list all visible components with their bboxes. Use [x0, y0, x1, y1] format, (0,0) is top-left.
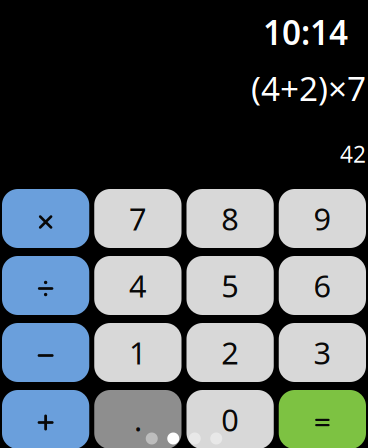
staticText: 6 [313, 265, 331, 306]
staticText: 7 [129, 198, 147, 239]
button[interactable]: 8 [186, 189, 274, 248]
staticText: 2 [221, 332, 239, 373]
button[interactable]: Equals [279, 390, 366, 448]
button[interactable]: 7 [94, 189, 181, 248]
staticText: 42 [340, 139, 366, 169]
staticText: 1 [129, 332, 147, 373]
button[interactable]: 5 [186, 256, 274, 315]
staticText: 10:14 [263, 10, 348, 54]
staticText: 8 [221, 198, 239, 239]
staticText: 9 [313, 198, 331, 239]
staticText: . [134, 399, 142, 440]
button[interactable]: 3 [279, 323, 366, 382]
staticText: 5 [221, 265, 239, 306]
button[interactable]: . [94, 390, 181, 448]
button[interactable]: 4 [94, 256, 181, 315]
button[interactable]: 9 [279, 189, 366, 248]
staticText: 3 [313, 332, 331, 373]
button[interactable]: Plus [2, 390, 89, 448]
button[interactable]: 0 [186, 390, 274, 448]
staticText: 4 [129, 265, 147, 306]
button[interactable]: Minus [2, 323, 89, 382]
button[interactable]: 2 [186, 323, 274, 382]
staticText: (4+2)×7 [251, 66, 366, 110]
button[interactable]: Multiply [2, 189, 89, 248]
button[interactable]: Divide [2, 256, 89, 315]
button[interactable]: 6 [279, 256, 366, 315]
button[interactable]: 1 [94, 323, 181, 382]
staticText: 0 [221, 399, 239, 440]
